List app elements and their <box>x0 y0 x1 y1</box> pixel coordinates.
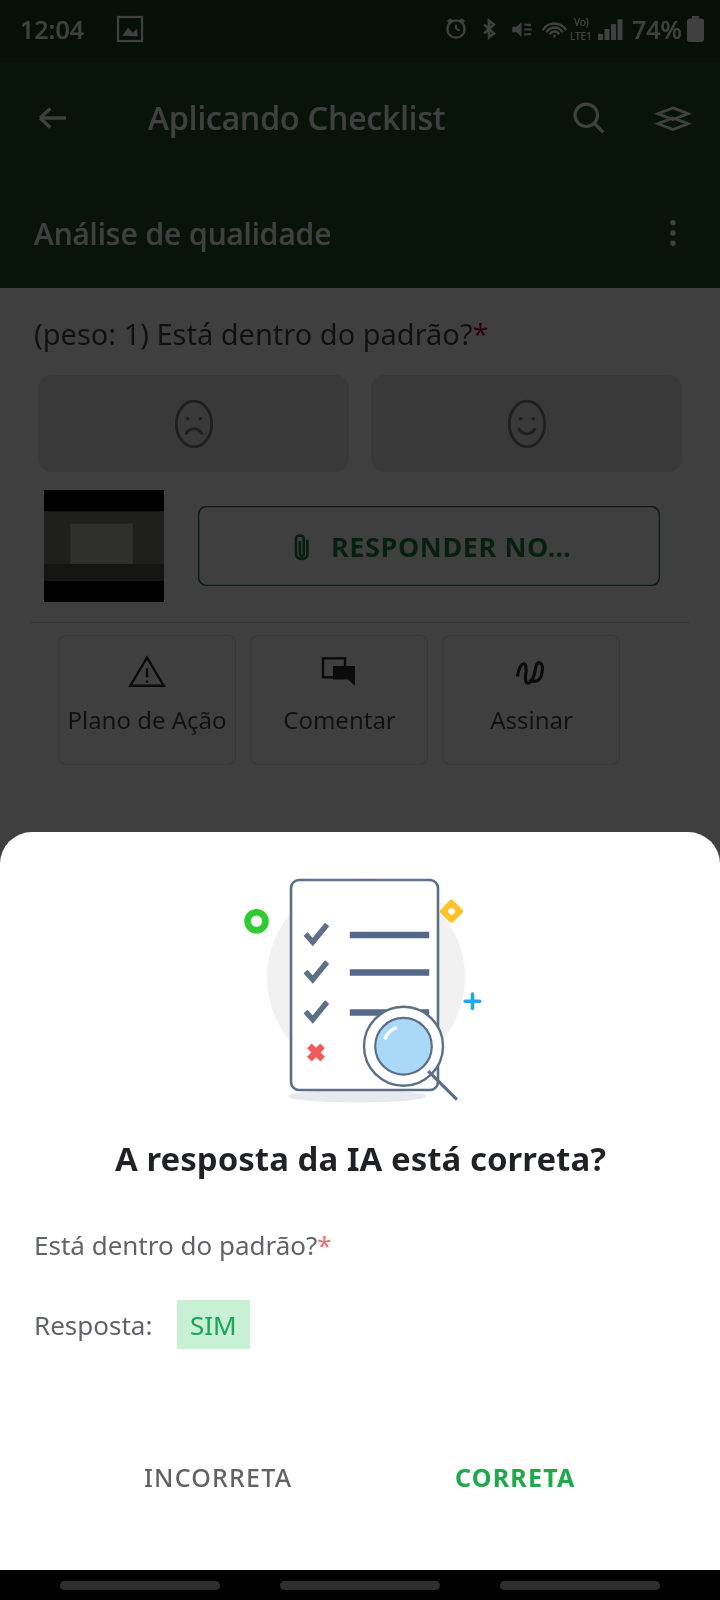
button[interactable]: Navigation <box>60 1581 220 1590</box>
button[interactable]: Search <box>558 87 620 149</box>
staticText: CORRETA <box>455 1460 576 1494</box>
staticText: Plano de Ação <box>67 703 227 736</box>
button[interactable]: Back <box>22 87 84 149</box>
staticText: Assinar <box>490 703 573 736</box>
button[interactable]: RESPONDER NO… <box>198 506 660 586</box>
staticText: Está dentro do padrão?* <box>34 1227 332 1262</box>
button[interactable]: Plano de Ação <box>58 635 236 765</box>
staticText: SIM <box>190 1307 237 1342</box>
button[interactable]: Assinar <box>442 635 620 765</box>
staticText: 74% <box>632 12 682 46</box>
staticText: Vo) <box>574 15 589 29</box>
staticText: INCORRETA <box>144 1460 293 1494</box>
staticText: Comentar <box>283 703 396 736</box>
button[interactable]: More options <box>644 204 702 262</box>
staticText: A resposta da IA está correta? <box>115 1136 606 1181</box>
button[interactable]: Navigation <box>500 1581 660 1590</box>
button[interactable]: Navigation <box>280 1581 440 1590</box>
staticText: LTE1 <box>570 29 592 43</box>
staticText: Aplicando Checklist <box>148 96 446 140</box>
button[interactable]: Layers <box>642 87 704 149</box>
staticText: Resposta: <box>34 1307 153 1342</box>
staticText: Análise de qualidade <box>34 213 332 254</box>
staticText: 12:04 <box>20 12 85 46</box>
staticText: RESPONDER NO… <box>331 528 572 565</box>
button[interactable]: Comentar <box>250 635 428 765</box>
button[interactable]: CORRETA <box>429 1446 602 1508</box>
button[interactable]: INCORRETA <box>118 1446 319 1508</box>
staticText: (peso: 1) Está dentro do padrão?* <box>34 314 489 353</box>
